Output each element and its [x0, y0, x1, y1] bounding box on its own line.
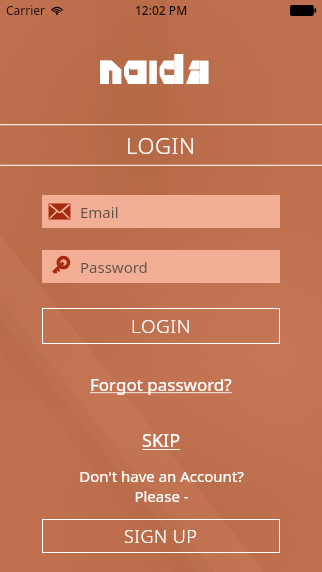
staticText: LOGIN	[131, 313, 191, 339]
button[interactable]: Password	[42, 250, 280, 283]
staticText: LOGIN	[126, 130, 196, 160]
staticText: Don't have an Account?	[79, 466, 244, 486]
staticText: SIGN UP	[124, 524, 198, 549]
button[interactable]: SIGN UP	[42, 519, 280, 553]
button[interactable]: LOGIN	[42, 308, 280, 344]
staticText: 12:02 PM	[135, 2, 188, 18]
staticText: Carrier	[6, 2, 46, 18]
button[interactable]: SKIP	[130, 425, 193, 456]
button[interactable]: Forgot password?	[80, 369, 242, 400]
button[interactable]: Email	[42, 195, 280, 228]
staticText: Please -	[134, 486, 189, 506]
staticText: Email	[80, 202, 119, 222]
staticText: Password	[80, 257, 148, 277]
